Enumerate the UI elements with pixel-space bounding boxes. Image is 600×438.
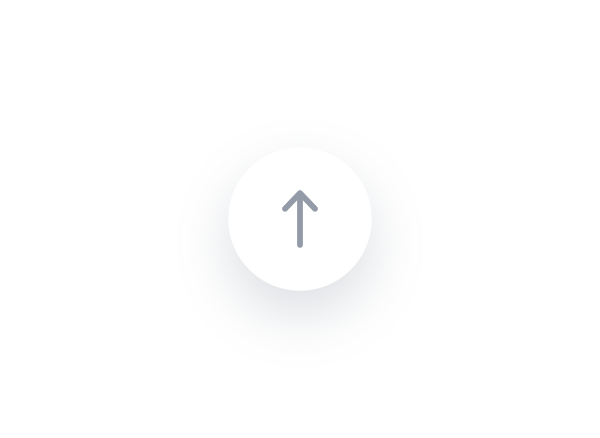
button[interactable]: Scroll to top [228,147,372,291]
